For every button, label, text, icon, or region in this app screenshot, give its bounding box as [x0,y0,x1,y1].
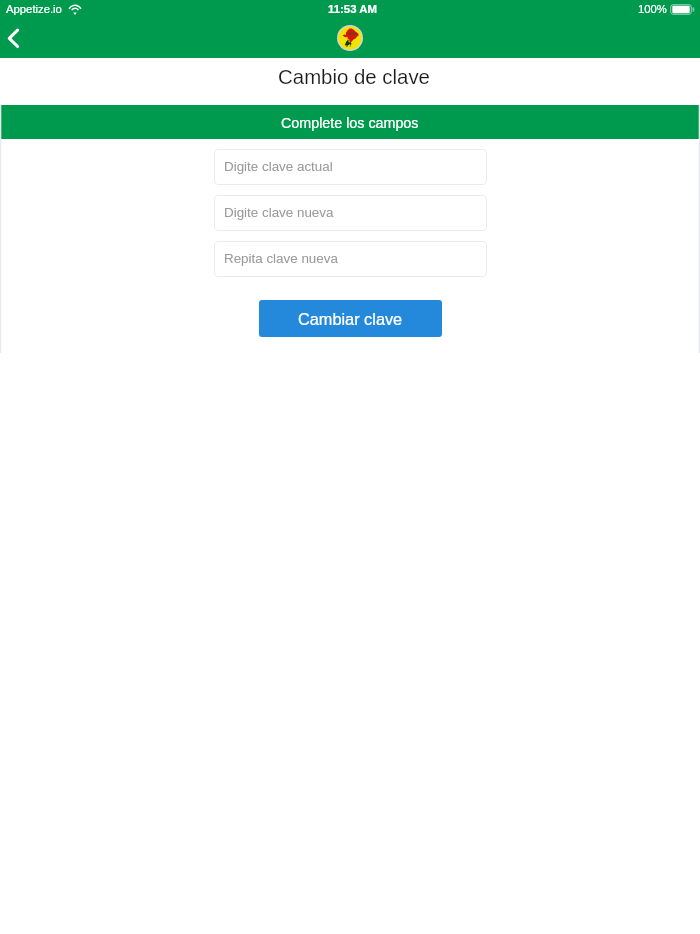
button[interactable]: Repita clave nueva [214,241,487,277]
staticText: 11:53 AM [328,3,377,16]
button[interactable]: Cambiar clave [259,300,442,337]
staticText: Digite clave nueva [224,205,334,220]
staticText: Complete los campos [281,115,419,131]
button[interactable]: Home [337,25,363,51]
button[interactable]: Digite clave nueva [214,195,487,231]
staticText: Cambio de clave [278,66,430,89]
staticText: 100% [638,3,667,16]
button[interactable]: Digite clave actual [214,149,487,185]
staticText: Repita clave nueva [224,251,338,266]
staticText: Cambiar clave [298,310,403,328]
button[interactable]: Back [0,20,38,58]
staticText: Digite clave actual [224,159,333,174]
staticText: Appetize.io [6,3,62,16]
